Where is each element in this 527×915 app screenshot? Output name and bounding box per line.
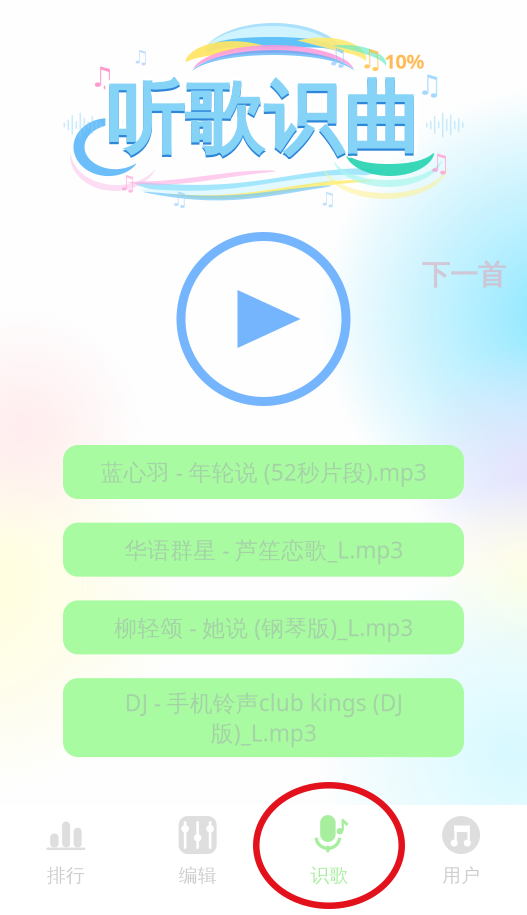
staticText: 编辑	[179, 864, 217, 887]
staticText: 听歌识曲	[103, 73, 419, 170]
button[interactable]: 华语群星 - 芦笙恋歌_L.mp3	[63, 523, 464, 577]
staticText: 听歌识曲	[103, 68, 419, 164]
staticText: ♫	[132, 46, 149, 68]
staticText: 听歌识曲	[108, 68, 424, 164]
staticText: 10%	[384, 48, 424, 74]
staticText: 听歌识曲	[108, 73, 424, 170]
staticText: ♫	[359, 44, 383, 74]
staticText: 听歌识曲	[109, 71, 425, 167]
staticText: 华语群星 - 芦笙恋歌_L.mp3	[124, 535, 403, 565]
staticText: ♫	[170, 188, 188, 210]
staticText: 听歌识曲	[105, 75, 421, 171]
staticText: 听歌识曲	[105, 67, 421, 163]
staticText: ♫	[326, 43, 348, 71]
staticText: 听歌识曲	[101, 71, 417, 167]
staticText: DJ - 手机铃声club kings (DJ版)_L.mp3	[124, 687, 402, 748]
button[interactable]: Play	[168, 224, 358, 414]
staticText: 识歌	[310, 864, 348, 887]
staticText: 听歌识曲	[105, 71, 421, 167]
staticText: 蓝心羽 - 年轮说 (52秒片段).mp3	[100, 457, 426, 487]
staticText: 用户	[442, 864, 480, 887]
button[interactable]: 用户	[395, 807, 527, 913]
button[interactable]: 下一首	[422, 258, 506, 292]
staticText: 下一首	[422, 258, 506, 292]
button[interactable]: 排行	[0, 807, 132, 913]
staticText: ♫	[90, 61, 115, 93]
staticText: 排行	[47, 864, 85, 887]
staticText: 柳轻颂 - 她说 (钢琴版)_L.mp3	[114, 612, 413, 642]
staticText: ♫	[319, 188, 336, 210]
staticText: ♫	[118, 171, 137, 195]
staticText: 听歌识曲	[105, 73, 421, 169]
button[interactable]: 编辑	[132, 807, 264, 913]
staticText: ♫	[428, 149, 451, 177]
button[interactable]: DJ - 手机铃声club kings (DJ版)_L.mp3	[63, 678, 464, 757]
button[interactable]: 识歌	[263, 807, 395, 913]
button[interactable]: 蓝心羽 - 年轮说 (52秒片段).mp3	[63, 445, 464, 499]
staticText: ♫	[417, 69, 442, 101]
button[interactable]: 柳轻颂 - 她说 (钢琴版)_L.mp3	[63, 600, 464, 654]
